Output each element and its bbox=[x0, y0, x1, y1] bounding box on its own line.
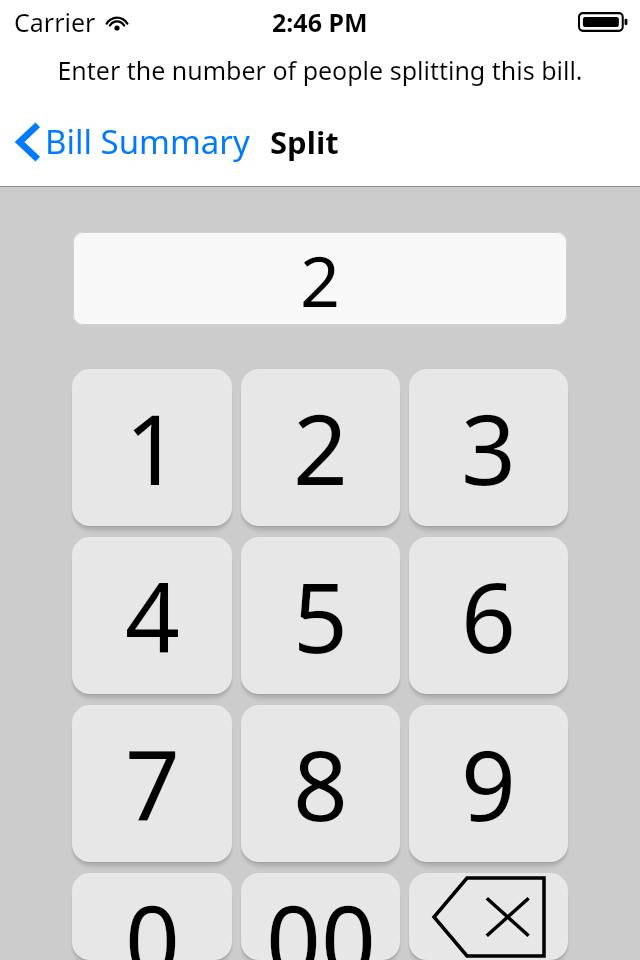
button[interactable]: 7 bbox=[72, 705, 232, 862]
button[interactable]: 8 bbox=[241, 705, 400, 862]
staticText: 2:46 PM bbox=[272, 5, 368, 39]
staticText: Bill Summary bbox=[45, 119, 250, 164]
button[interactable]: 3 bbox=[409, 369, 568, 526]
button[interactable]: 4 bbox=[72, 537, 232, 694]
staticText: 00 bbox=[266, 873, 376, 960]
button[interactable]: 0 bbox=[72, 873, 232, 960]
staticText: 4 bbox=[125, 550, 180, 681]
staticText: Carrier bbox=[14, 5, 96, 39]
button[interactable]: 00 bbox=[241, 873, 400, 960]
staticText: 6 bbox=[461, 550, 516, 681]
staticText: 2 bbox=[300, 232, 341, 325]
staticText: 3 bbox=[461, 382, 516, 513]
staticText: Split bbox=[270, 121, 339, 163]
button[interactable]: 5 bbox=[241, 537, 400, 694]
button[interactable]: 2 bbox=[241, 369, 400, 526]
staticText: 9 bbox=[461, 718, 516, 849]
button[interactable]: 6 bbox=[409, 537, 568, 694]
button[interactable]: Delete bbox=[409, 873, 568, 960]
staticText: 1 bbox=[125, 382, 180, 513]
button[interactable]: 9 bbox=[409, 705, 568, 862]
staticText: Enter the number of people splitting thi… bbox=[57, 53, 583, 87]
staticText: 7 bbox=[125, 718, 180, 849]
button[interactable]: 1 bbox=[72, 369, 232, 526]
staticText: 0 bbox=[125, 873, 180, 960]
staticText: 5 bbox=[293, 550, 348, 681]
staticText: 2 bbox=[293, 382, 348, 513]
staticText: 8 bbox=[293, 718, 348, 849]
button[interactable]: 2 bbox=[73, 232, 567, 325]
button[interactable]: Back bbox=[10, 113, 256, 170]
other: Back bbox=[16, 122, 38, 162]
